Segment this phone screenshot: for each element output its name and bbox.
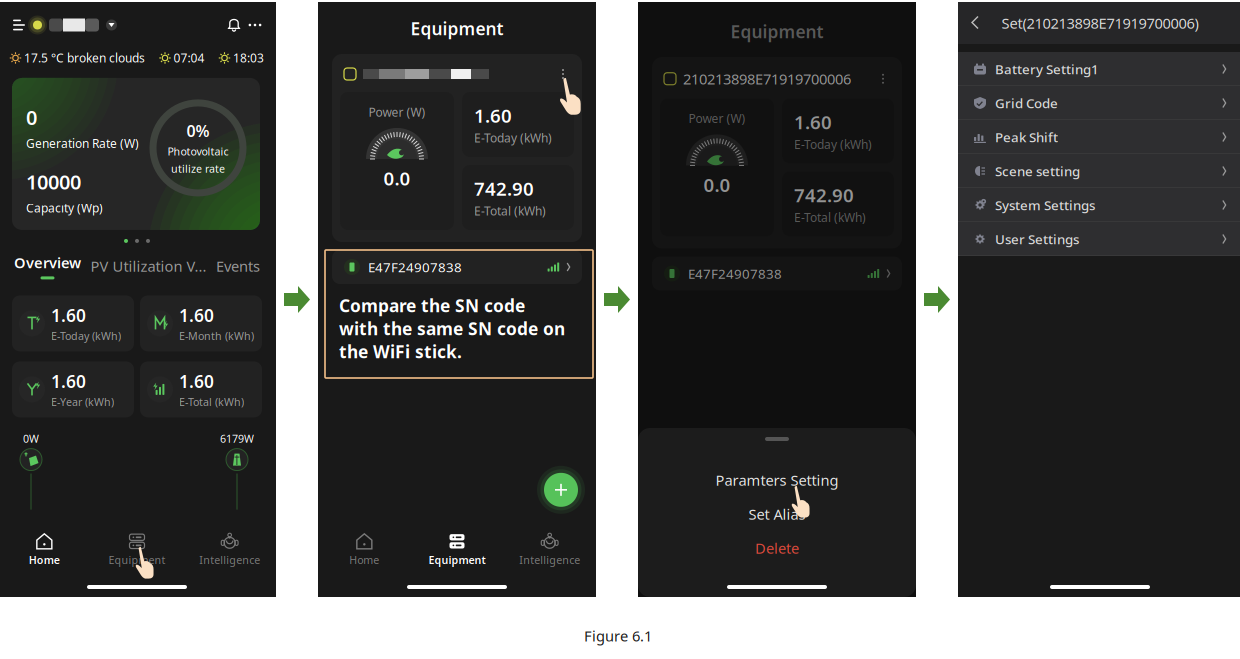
button[interactable]: Paramters Setting [638, 465, 916, 495]
button[interactable]: Expand [106, 19, 117, 30]
staticText: Intelligence [199, 553, 260, 567]
staticText: Paramters Setting [715, 470, 838, 490]
button[interactable]: Overview [14, 253, 81, 279]
button[interactable]: Device menu [556, 66, 570, 82]
staticText: Intelligence [519, 553, 580, 567]
button[interactable]: 1.60 [140, 361, 262, 417]
button[interactable]: Intelligence [183, 534, 276, 567]
button[interactable]: E47F24907838 [332, 250, 582, 284]
button[interactable]: Equipment [411, 534, 503, 567]
button[interactable]: Intelligence [503, 534, 596, 567]
staticText: 0.0 [383, 166, 410, 191]
staticText: E-Total (kWh) [474, 203, 546, 219]
button[interactable]: E47F24907838 [652, 256, 902, 290]
staticText: Events [216, 256, 260, 276]
button[interactable]: Delete [638, 533, 916, 563]
staticText: 1.60 [51, 370, 86, 393]
staticText: 1.60 [794, 110, 832, 134]
staticText: 1.60 [179, 304, 214, 327]
staticText: 0% [186, 120, 209, 141]
staticText: Home [29, 553, 60, 567]
button[interactable]: User Settings [958, 222, 1240, 256]
staticText: 742.90 [474, 176, 534, 201]
staticText: Equipment [730, 20, 823, 43]
staticText: 0W [23, 431, 39, 446]
staticText: 10000 [26, 168, 81, 195]
button[interactable]: System Settings [958, 188, 1240, 222]
staticText: 1.60 [474, 103, 512, 128]
staticText: Scene setting [995, 162, 1080, 180]
button[interactable]: 1.60 [12, 361, 134, 417]
staticText: Peak Shift [995, 128, 1058, 146]
button[interactable]: Scene setting [958, 154, 1240, 188]
staticText: E-Today (kWh) [51, 329, 121, 343]
staticText: Capacity (Wp) [26, 200, 103, 216]
staticText: Set Alias [748, 504, 805, 524]
staticText: Battery Setting1 [995, 60, 1099, 78]
staticText: User Settings [995, 230, 1079, 248]
button[interactable]: PV Utilization V... [90, 256, 206, 276]
staticText: 18:03 [230, 50, 264, 66]
staticText: E47F24907838 [688, 265, 782, 282]
staticText: Photovoltaic [167, 144, 228, 159]
staticText: Overview [14, 253, 81, 272]
button[interactable]: Set Alias [638, 499, 916, 529]
button[interactable]: Back [958, 6, 993, 39]
staticText: 07:04 [170, 50, 204, 66]
staticText: utilize rate [171, 162, 225, 176]
button[interactable]: Plant selector [49, 18, 99, 31]
button[interactable]: Device menu [876, 71, 890, 87]
staticText: E-Today (kWh) [794, 136, 872, 152]
button[interactable]: Events [216, 256, 260, 276]
button[interactable]: Peak Shift [958, 120, 1240, 154]
staticText: 17.5 °C broken clouds [21, 50, 145, 66]
button[interactable]: 1.60 [140, 295, 262, 351]
staticText: Set(210213898E71919700006) [1001, 13, 1198, 33]
staticText: Generation Rate (W) [26, 135, 139, 151]
staticText: 0 [26, 104, 37, 130]
button[interactable]: Equipment [91, 534, 183, 567]
button[interactable]: More [248, 18, 262, 32]
staticText: E-Month (kWh) [179, 329, 254, 343]
staticText: Equipment [108, 553, 165, 567]
button[interactable]: Add device [537, 466, 585, 514]
staticText: Figure 6.1 [584, 626, 652, 645]
staticText: Power (W) [688, 110, 745, 126]
staticText: Compare the SN code with the same SN cod… [339, 294, 565, 363]
staticText: E-Today (kWh) [474, 130, 552, 146]
staticText: E47F24907838 [368, 258, 462, 276]
staticText: E-Total (kWh) [794, 209, 866, 225]
staticText: 1.60 [179, 370, 214, 393]
button[interactable]: 1.60 [12, 295, 134, 351]
staticText: 742.90 [794, 183, 854, 207]
staticText: System Settings [995, 196, 1095, 214]
staticText: Equipment [428, 553, 485, 567]
staticText: 210213898E71919700006 [683, 69, 851, 88]
staticText: 1.60 [51, 304, 86, 327]
staticText: Delete [755, 538, 799, 558]
staticText: Home [349, 553, 379, 567]
staticText: 6179W [220, 431, 254, 446]
staticText: Grid Code [995, 94, 1058, 112]
button[interactable]: Home [318, 534, 411, 567]
staticText: E-Total (kWh) [179, 395, 244, 409]
button[interactable]: Notifications [227, 18, 241, 32]
button[interactable]: Grid Code [958, 86, 1240, 120]
staticText: PV Utilization V... [90, 256, 206, 276]
staticText: E-Year (kWh) [51, 395, 114, 409]
button[interactable]: Battery Setting1 [958, 52, 1240, 86]
button[interactable]: Home [0, 534, 91, 567]
staticText: Power (W) [368, 104, 425, 120]
staticText: 0.0 [703, 172, 730, 197]
button[interactable]: Menu [12, 18, 26, 32]
staticText: Equipment [410, 17, 503, 40]
